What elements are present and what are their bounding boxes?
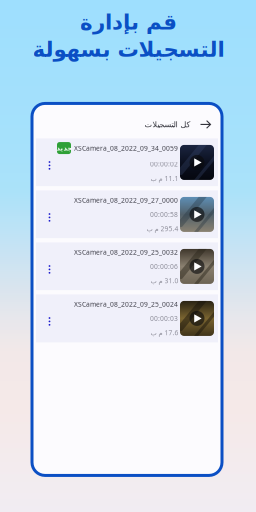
staticText: 11.1 م ب	[150, 174, 178, 183]
button[interactable]: XSCamera_08_2022_09_25_0024	[36, 294, 218, 342]
staticText: قم بإدارة	[79, 10, 176, 34]
staticText: 00:00:02	[150, 160, 178, 168]
staticText: XSCamera_08_2022_09_25_0024	[74, 300, 178, 308]
staticText: كل التسجيلات	[144, 120, 190, 129]
staticText: XSCamera_08_2022_09_34_0059	[74, 144, 178, 152]
button[interactable]: جديد	[36, 138, 218, 186]
staticText: XSCamera_08_2022_09_27_0000	[74, 196, 178, 204]
staticText: XSCamera_08_2022_09_25_0032	[74, 248, 178, 256]
staticText: 295.4 م ب	[146, 224, 178, 233]
button[interactable]: رجوع	[190, 119, 220, 129]
staticText: التسجيلات بسهولة	[32, 37, 224, 61]
staticText: 17.6 م ب	[150, 328, 178, 337]
staticText: 31.0 م ب	[150, 276, 178, 285]
staticText: 00:00:06	[150, 262, 178, 271]
staticText: 00:00:03	[150, 314, 178, 323]
staticText: جديد	[56, 144, 72, 152]
staticText: 00:00:58	[150, 210, 178, 219]
button[interactable]: XSCamera_08_2022_09_25_0032	[36, 242, 218, 290]
button[interactable]: XSCamera_08_2022_09_27_0000	[36, 190, 218, 238]
